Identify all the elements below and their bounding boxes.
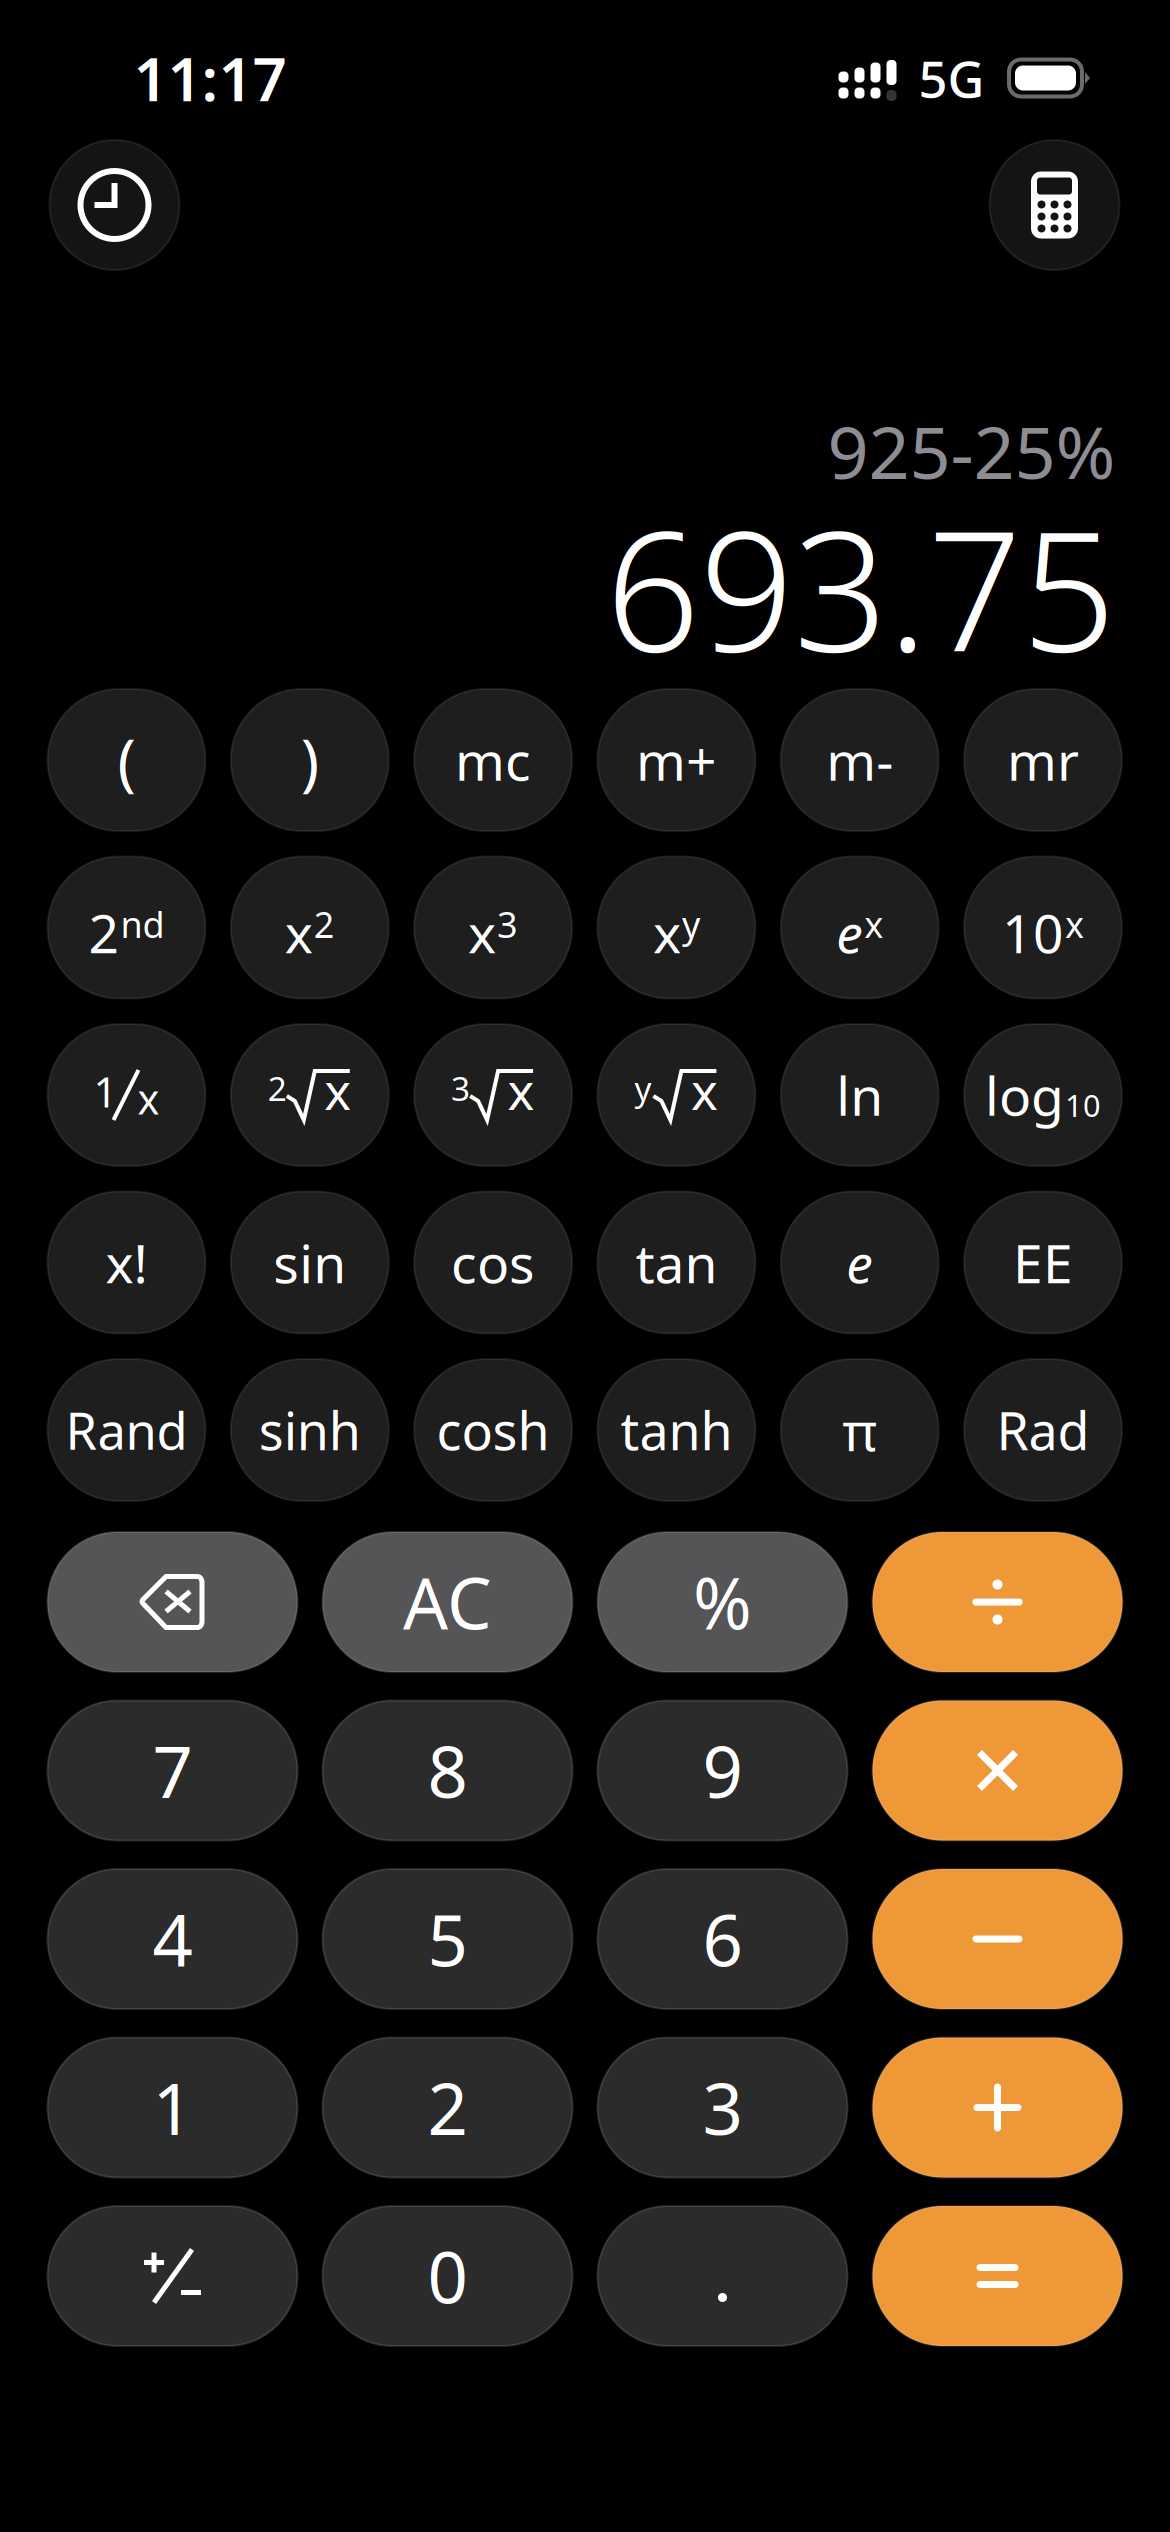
button[interactable] [872,1869,1122,2009]
staticText: π [842,1395,877,1465]
button[interactable]: Rand [47,1359,205,1501]
staticText: 8 [427,1724,467,1817]
button[interactable]: x [597,856,755,998]
staticText: x [1065,900,1084,948]
button[interactable]: ( [47,689,205,831]
staticText: 10 [1065,1085,1101,1125]
staticText: x [324,1057,351,1124]
button[interactable]: 3 [414,1024,572,1166]
staticText: 3 [497,900,518,948]
staticText: 4 [152,1892,192,1986]
button[interactable]: 9 [597,1700,847,1840]
staticText: EE [1013,1227,1073,1298]
button[interactable]: AC [322,1532,572,1672]
button[interactable]: EE [964,1191,1122,1333]
button[interactable]: x! [47,1191,205,1333]
staticText: ( [117,719,135,801]
staticText: 6 [702,1892,742,1986]
staticText: 1 [93,1064,117,1119]
staticText: x [468,897,496,968]
staticText: 3 [702,2061,742,2154]
button[interactable]: y [597,1024,755,1166]
staticText: mc [455,725,531,795]
button[interactable]: % [597,1532,847,1672]
staticText: x [508,1057,535,1124]
button[interactable] [597,2206,847,2346]
staticText: 9 [702,1724,742,1817]
button[interactable]: tanh [597,1359,755,1501]
button[interactable] [872,1532,1122,1672]
staticText: y [682,900,700,948]
button[interactable]: x [231,856,389,998]
button[interactable]: x [414,856,572,998]
staticText: x [864,900,883,948]
staticText: 2 [314,900,335,948]
staticText: 5 [427,1892,467,1986]
button[interactable]: 2 [322,2037,572,2177]
button[interactable]: cos [414,1191,572,1333]
staticText: 10 [1002,897,1064,968]
staticText: 3 [451,1066,470,1110]
staticText: mr [1007,725,1079,795]
button[interactable]: e [781,1191,939,1333]
button[interactable]: mc [414,689,572,831]
button[interactable] [872,2206,1122,2346]
button[interactable]: ln [781,1024,939,1166]
staticText: 2 [427,2061,467,2154]
button[interactable] [872,2037,1122,2177]
button[interactable]: π [781,1359,939,1501]
staticText: 5G [918,44,984,112]
button[interactable]: 1 [47,2037,297,2177]
staticText: 2 [268,1066,287,1110]
button[interactable]: 7 [47,1700,297,1840]
staticText: x! [105,1227,147,1298]
button[interactable] [47,2206,297,2346]
button[interactable]: History [49,140,179,270]
staticText: 0 [427,2229,467,2323]
button[interactable]: 6 [597,1869,847,2009]
button[interactable]: cosh [414,1359,572,1501]
staticText: x [691,1057,718,1124]
staticText: 11:17 [133,38,286,118]
button[interactable]: ) [231,689,389,831]
button[interactable]: 2 [47,856,205,998]
staticText: x [285,897,313,968]
staticText: x [137,1071,159,1126]
staticText: 1 [152,2061,192,2154]
button[interactable]: 3 [597,2037,847,2177]
staticText: 693.75 [605,477,1115,697]
staticText: nd [120,900,164,948]
staticText: % [693,1555,752,1649]
button[interactable]: Rad [964,1359,1122,1501]
staticText: cosh [437,1395,550,1465]
button[interactable]: e [781,856,939,998]
button[interactable]: 8 [322,1700,572,1840]
staticText: Rand [65,1396,187,1464]
button[interactable]: 0 [322,2206,572,2346]
button[interactable]: 10 [964,856,1122,998]
button[interactable]: sin [231,1191,389,1333]
button[interactable]: tan [597,1191,755,1333]
staticText: log [985,1060,1064,1130]
staticText: tanh [620,1395,732,1465]
button[interactable]: log [964,1024,1122,1166]
button[interactable]: sinh [231,1359,389,1501]
staticText: e [846,1227,873,1298]
staticText: m+ [636,725,717,795]
button[interactable] [872,1700,1122,1840]
button[interactable] [47,1532,297,1672]
button[interactable]: 4 [47,1869,297,2009]
staticText: 925-25% [827,403,1115,499]
button[interactable]: 1 [47,1024,205,1166]
button[interactable]: mr [964,689,1122,831]
staticText: m- [826,725,893,795]
staticText: AC [403,1555,492,1649]
button[interactable]: 5 [322,1869,572,2009]
staticText: Rad [996,1395,1089,1465]
button[interactable]: 2 [231,1024,389,1166]
staticText: 7 [152,1724,192,1817]
button[interactable]: m+ [597,689,755,831]
button[interactable]: Calculator keypad [989,140,1119,270]
staticText: tan [635,1227,717,1298]
button[interactable]: m- [781,689,939,831]
